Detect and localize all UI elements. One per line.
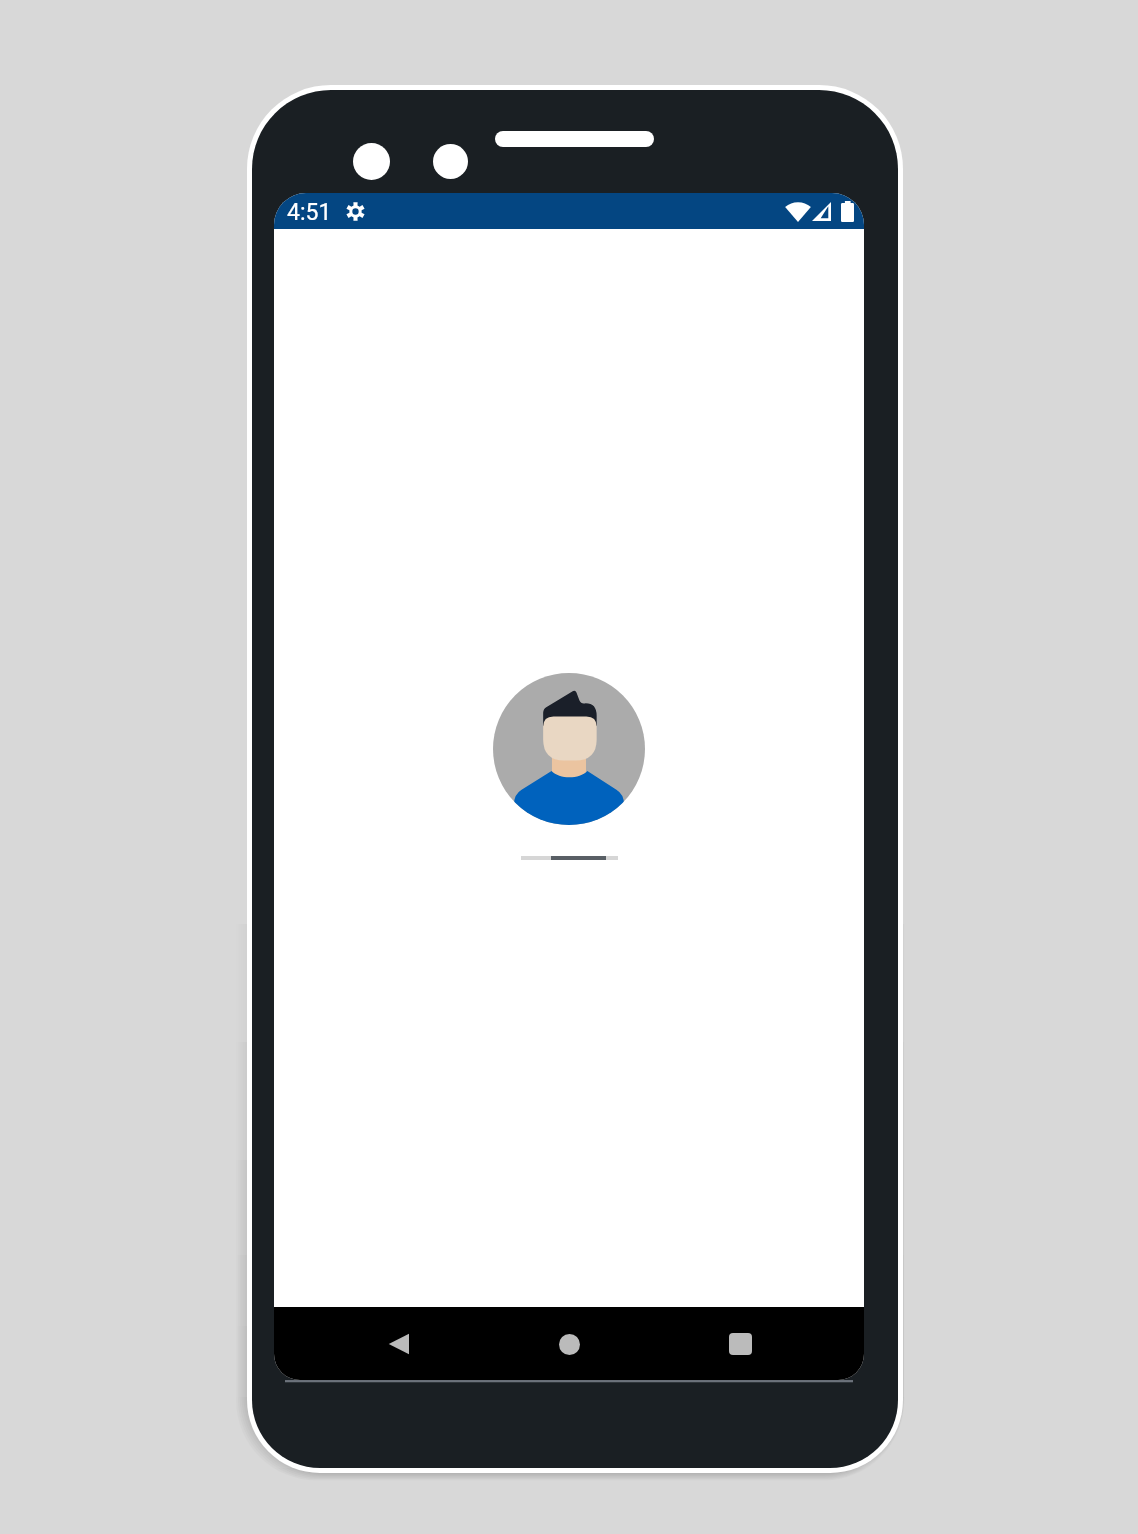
button[interactable]: Recent apps: [708, 1312, 772, 1376]
button[interactable]: Back: [366, 1312, 430, 1376]
button[interactable]: Home: [537, 1312, 601, 1376]
staticText: 4:51: [287, 199, 332, 226]
button[interactable]: Settings: [341, 193, 370, 229]
